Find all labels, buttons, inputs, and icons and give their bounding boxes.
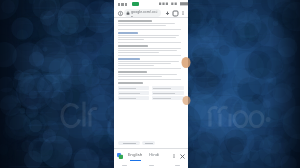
button[interactable]: Close: [178, 152, 186, 160]
button[interactable]: [152, 86, 184, 90]
button[interactable]: Translate options: [170, 152, 178, 160]
button[interactable]: [142, 141, 155, 145]
staticText: google.com/.co.in: [131, 9, 159, 17]
button[interactable]: google.com/.co.in: [124, 9, 161, 17]
button[interactable]: [152, 96, 184, 100]
button[interactable]: [118, 91, 149, 95]
button[interactable]: Google Translate: [116, 152, 124, 160]
button[interactable]: [118, 96, 149, 100]
staticText: English: [128, 152, 143, 158]
button[interactable]: Download: [163, 9, 171, 17]
button[interactable]: Site information: [116, 9, 124, 17]
button[interactable]: [118, 141, 140, 145]
button[interactable]: [118, 86, 149, 90]
button[interactable]: More options: [179, 9, 186, 16]
staticText: Hindi: [149, 152, 160, 158]
button[interactable]: English: [126, 151, 145, 159]
button[interactable]: [152, 91, 184, 95]
button[interactable]: Tabs: [171, 9, 179, 17]
button[interactable]: Hindi: [147, 151, 162, 159]
